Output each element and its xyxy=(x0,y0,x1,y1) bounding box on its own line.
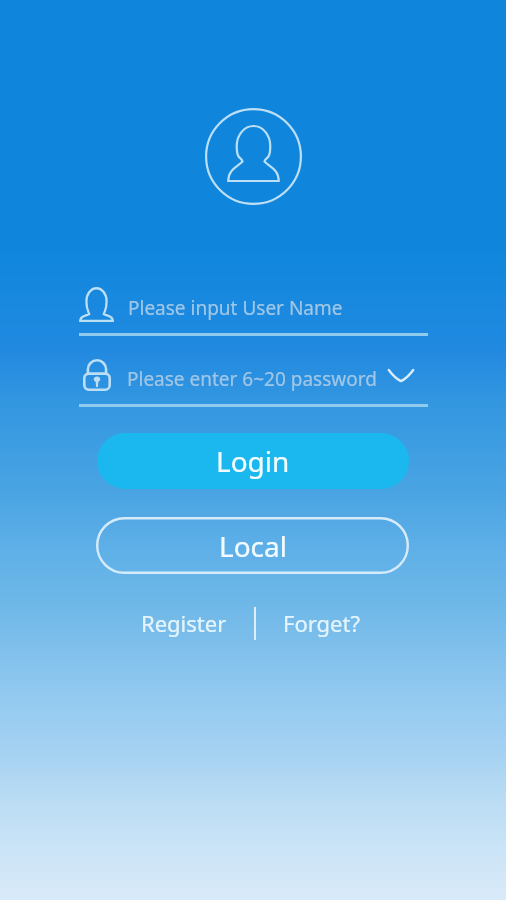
staticText: Login xyxy=(216,442,290,480)
staticText: Forget? xyxy=(283,608,361,638)
button[interactable]: Forget? xyxy=(271,600,373,646)
staticText: Local xyxy=(219,527,287,565)
button[interactable]: Login xyxy=(97,433,409,489)
staticText: Register xyxy=(141,608,227,638)
staticText: Please enter 6~20 password xyxy=(127,366,377,392)
button[interactable]: Register xyxy=(129,600,239,646)
button[interactable]: Local xyxy=(96,517,409,574)
button[interactable]: Show password xyxy=(385,362,417,388)
staticText: Please input User Name xyxy=(128,295,343,321)
